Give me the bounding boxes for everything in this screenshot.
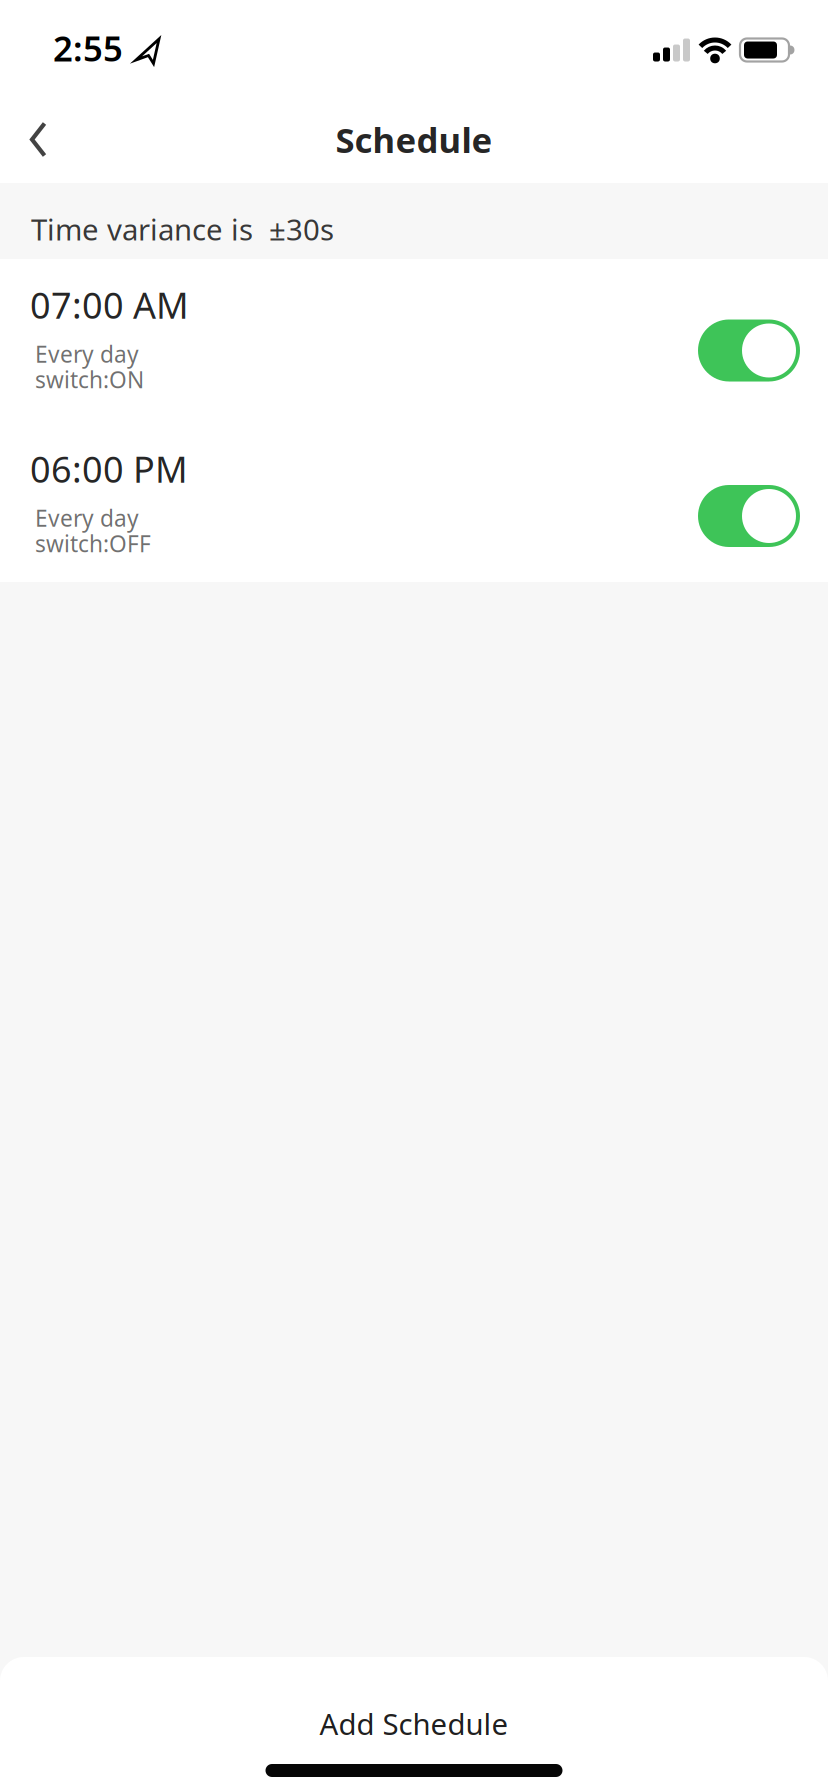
staticText: Every day switch:ON	[35, 339, 144, 394]
staticText: Add Schedule	[319, 1704, 508, 1743]
staticText: 2:55	[53, 25, 123, 71]
staticText: 07:00 AM	[30, 281, 189, 329]
button[interactable]: Back	[0, 111, 49, 167]
staticText: 06:00 PM	[30, 445, 188, 493]
button[interactable]: Add Schedule	[279, 1694, 548, 1753]
button[interactable]: Toggle schedule	[698, 319, 800, 381]
staticText: Every day switch:OFF	[35, 503, 151, 558]
staticText: Schedule	[335, 116, 492, 162]
button[interactable]: 07:00 AM	[0, 259, 828, 420]
button[interactable]: Toggle schedule	[698, 485, 800, 547]
staticText: Time variance is ±30s	[31, 209, 334, 248]
button[interactable]: 06:00 PM	[0, 420, 828, 582]
